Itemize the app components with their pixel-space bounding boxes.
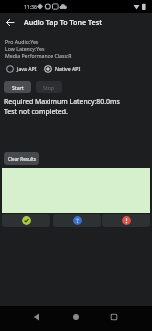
staticText: Low Latency:Yes [5,45,45,52]
staticText: Start [12,84,24,91]
button[interactable] [102,214,150,227]
button[interactable] [53,214,101,227]
button[interactable]: Stop [36,81,62,93]
staticText: Audio Tap To Tone Test [24,17,102,27]
button[interactable]: Native API [43,63,87,75]
staticText: Stop [43,84,55,91]
button[interactable]: Clear Results [4,152,39,165]
button[interactable] [26,308,46,326]
staticText: Pro Audio:Yes [5,38,39,45]
button[interactable]: Java API [5,63,43,75]
button[interactable] [2,214,50,227]
staticText: 11:36 [24,4,37,11]
button[interactable] [2,15,18,29]
button[interactable] [104,308,124,326]
staticText: Native API [55,65,81,72]
button[interactable]: Start [4,81,31,93]
staticText: Clear Results [8,156,36,162]
button[interactable] [66,308,86,326]
staticText: Test not completed. [4,107,68,116]
staticText: Media Performance Class:R [5,52,72,59]
staticText: Required Maximum Latency:80.0ms [4,97,120,106]
staticText: Java API [17,65,37,72]
